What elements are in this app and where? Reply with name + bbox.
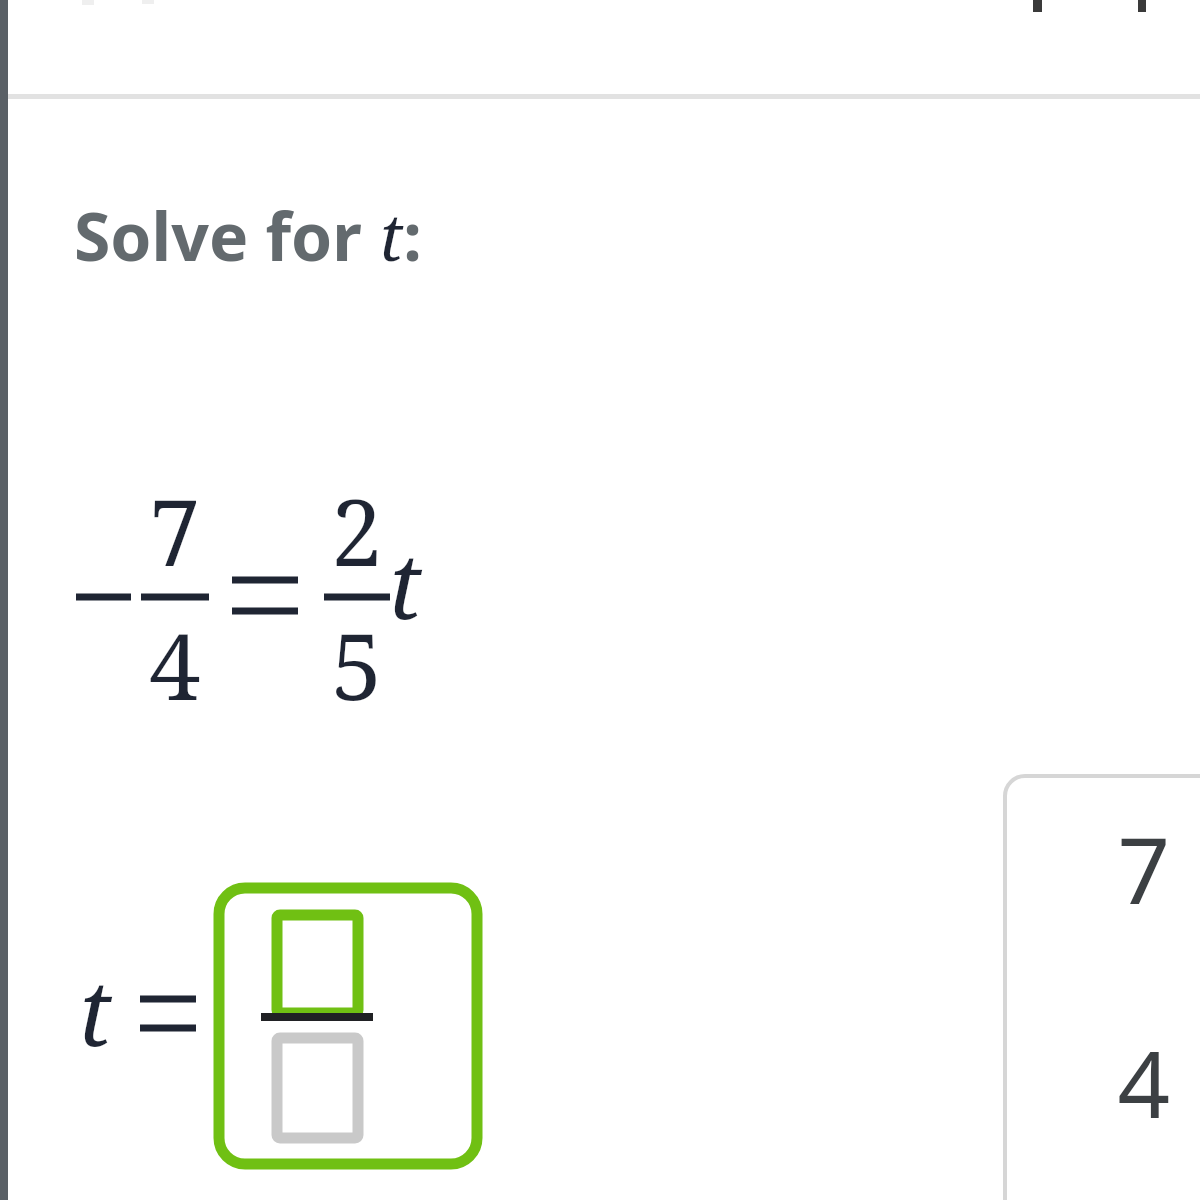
button[interactable]: Answer choice 7 over 4 bbox=[1005, 776, 1200, 1200]
button[interactable]: Numerator input bbox=[271, 909, 364, 1019]
button[interactable]: Denominator input bbox=[271, 1032, 364, 1144]
button[interactable]: Fraction answer field bbox=[219, 888, 477, 1164]
